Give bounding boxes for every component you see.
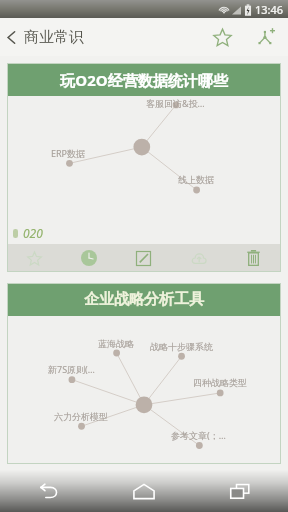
staticText: 020 xyxy=(23,225,43,241)
staticText: 线上数据 xyxy=(178,174,214,185)
button[interactable]: Edit xyxy=(116,244,171,272)
button[interactable]: Recent xyxy=(61,244,116,272)
button[interactable]: Recent apps xyxy=(192,470,288,512)
staticText: ERP数据 xyxy=(51,147,86,159)
staticText: 玩O2O经营数据统计哪些 xyxy=(60,70,228,90)
staticText: 蓝海战略 xyxy=(98,338,134,349)
staticText: 商业常识 xyxy=(24,28,84,47)
button[interactable]: Home xyxy=(96,470,192,512)
button[interactable]: Upload xyxy=(171,244,226,272)
staticText: 客服回访&投… xyxy=(146,97,205,109)
button[interactable]: Delete xyxy=(226,244,281,272)
staticText: 企业战略分析工具 xyxy=(84,290,204,309)
staticText: 新7S原则(… xyxy=(48,363,95,375)
staticText: 13:46 xyxy=(255,2,284,17)
button[interactable]: Back xyxy=(0,18,92,56)
button[interactable]: Favorite xyxy=(7,244,61,272)
button[interactable]: Favorite xyxy=(200,18,244,56)
staticText: 战略十步骤系统 xyxy=(150,341,213,352)
button[interactable]: 企业战略分析工具 xyxy=(7,283,281,464)
staticText: 参考文章(；… xyxy=(171,429,226,441)
button[interactable]: 玩O2O经营数据统计哪些 xyxy=(7,63,281,272)
button[interactable]: Back xyxy=(0,470,96,512)
staticText: 六力分析模型 xyxy=(54,411,108,422)
button[interactable]: New mind map xyxy=(244,18,288,56)
staticText: 四种战略类型 xyxy=(193,377,247,388)
other: Back xyxy=(7,30,16,45)
